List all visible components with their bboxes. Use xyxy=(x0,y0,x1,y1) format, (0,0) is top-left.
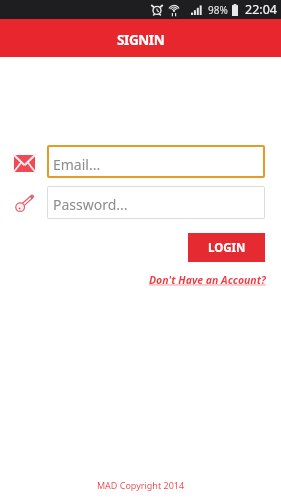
staticText: Email... xyxy=(53,155,101,174)
button[interactable]: LOGIN xyxy=(188,233,265,262)
button[interactable]: Password... xyxy=(47,186,265,219)
staticText: 22:04 xyxy=(245,1,277,18)
staticText: Password... xyxy=(53,195,128,214)
staticText: 98% xyxy=(208,3,228,17)
button[interactable]: Don't Have an Account? xyxy=(148,272,267,288)
staticText: LOGIN xyxy=(208,240,246,256)
other: Password xyxy=(13,193,35,213)
staticText: MAD Copyright 2014 xyxy=(0,479,281,491)
staticText: SIGNIN xyxy=(117,31,165,49)
other: Email xyxy=(13,153,35,173)
staticText: Don't Have an Account? xyxy=(149,273,266,287)
button[interactable]: Email... xyxy=(47,145,265,178)
